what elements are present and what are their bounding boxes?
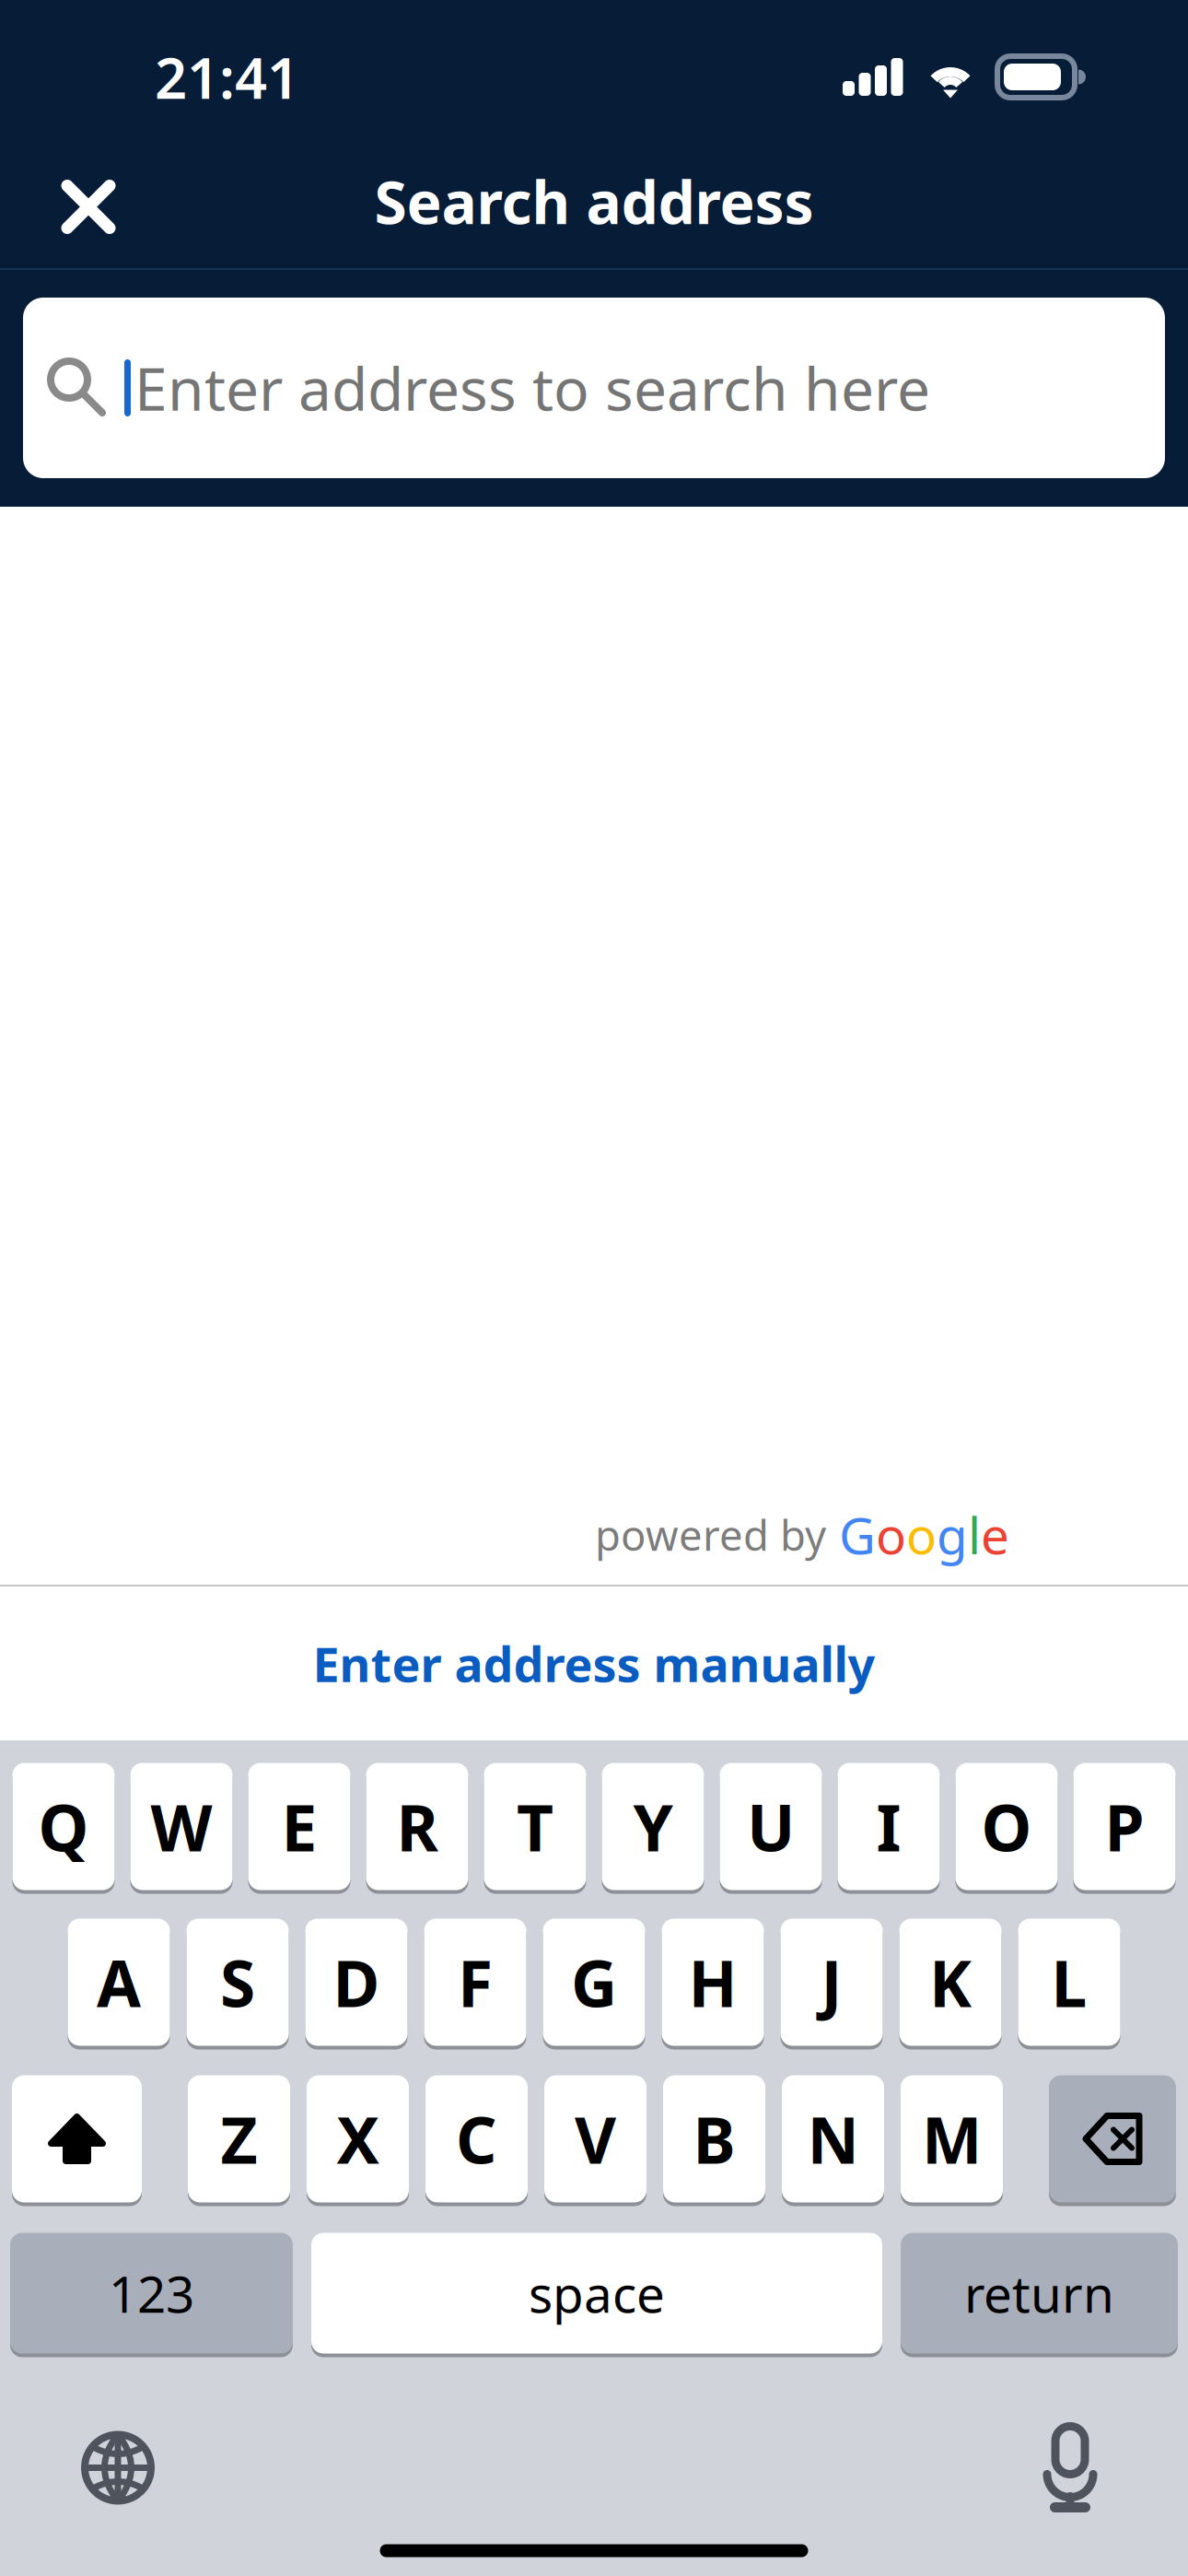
button[interactable]: E	[248, 1759, 350, 1894]
button[interactable]: A	[68, 1915, 170, 2049]
staticText: A	[97, 1940, 141, 2025]
button[interactable]: W	[130, 1759, 233, 1894]
button[interactable]: C	[425, 2072, 528, 2206]
staticText: o	[906, 1501, 937, 1568]
button[interactable]: X	[307, 2072, 409, 2206]
button[interactable]: 123	[10, 2229, 293, 2357]
staticText: S	[220, 1940, 255, 2025]
staticText: l	[968, 1501, 981, 1568]
staticText: N	[807, 2096, 859, 2181]
staticText: Search address	[374, 162, 814, 240]
button[interactable]: V	[544, 2072, 646, 2206]
button[interactable]: Z	[188, 2072, 290, 2206]
staticText: F	[458, 1940, 493, 2025]
button[interactable]: Delete	[1049, 2072, 1176, 2206]
staticText: K	[929, 1940, 972, 2025]
button[interactable]: Enter address manually	[0, 1587, 1188, 1740]
button[interactable]: Enter address to search here	[23, 298, 1165, 478]
staticText: Enter address to search here	[134, 349, 930, 427]
button[interactable]: I	[838, 1759, 940, 1894]
staticText: g	[937, 1501, 968, 1568]
staticText: J	[821, 1940, 842, 2025]
staticText: Y	[633, 1784, 673, 1869]
button[interactable]: B	[663, 2072, 765, 2206]
button[interactable]: D	[305, 1915, 408, 2049]
staticText: space	[529, 2260, 665, 2327]
button[interactable]: space	[311, 2229, 882, 2357]
staticText: G	[839, 1501, 876, 1568]
button[interactable]: Next keyboard	[53, 2399, 182, 2537]
button[interactable]: J	[780, 1915, 883, 2049]
staticText: Z	[221, 2096, 257, 2181]
staticText: P	[1105, 1784, 1144, 1869]
button[interactable]: T	[484, 1759, 586, 1894]
button[interactable]: F	[424, 1915, 526, 2049]
staticText: T	[517, 1784, 553, 1869]
staticText: O	[981, 1784, 1032, 1869]
button[interactable]: P	[1073, 1759, 1176, 1894]
button[interactable]: L	[1018, 1915, 1120, 2049]
staticText: G	[571, 1940, 617, 2025]
staticText: U	[747, 1784, 795, 1869]
staticText: E	[281, 1784, 317, 1869]
staticText: R	[396, 1784, 438, 1869]
staticText: 21:41	[155, 39, 299, 114]
staticText: Enter address manually	[313, 1632, 875, 1695]
button[interactable]: G	[543, 1915, 645, 2049]
button[interactable]: K	[899, 1915, 1002, 2049]
staticText: W	[151, 1784, 212, 1869]
button[interactable]: R	[366, 1759, 468, 1894]
staticText: C	[456, 2096, 497, 2181]
staticText: M	[922, 2096, 982, 2181]
staticText: Q	[38, 1784, 89, 1869]
staticText: I	[876, 1784, 901, 1869]
staticText: o	[876, 1501, 906, 1568]
staticText: powered by	[595, 1507, 826, 1562]
button[interactable]: S	[186, 1915, 289, 2049]
button[interactable]: M	[901, 2072, 1003, 2206]
staticText: V	[575, 2096, 616, 2181]
button[interactable]: Dictation	[1006, 2399, 1135, 2537]
staticText: return	[964, 2260, 1114, 2327]
button[interactable]: Shift	[12, 2072, 142, 2206]
staticText: e	[981, 1501, 1009, 1568]
button[interactable]: O	[955, 1759, 1058, 1894]
button[interactable]: H	[662, 1915, 764, 2049]
button[interactable]: Close	[0, 127, 177, 246]
staticText: D	[333, 1940, 380, 2025]
staticText: X	[337, 2096, 379, 2181]
staticText: L	[1051, 1940, 1087, 2025]
button[interactable]: Y	[602, 1759, 704, 1894]
staticText: 123	[109, 2260, 194, 2327]
staticText: H	[688, 1940, 737, 2025]
button[interactable]: return	[901, 2229, 1178, 2357]
button[interactable]: Q	[12, 1759, 115, 1894]
staticText: B	[693, 2096, 735, 2181]
button[interactable]: U	[720, 1759, 822, 1894]
button[interactable]: N	[782, 2072, 884, 2206]
